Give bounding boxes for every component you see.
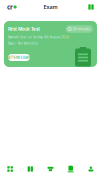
staticText: 20 minutes: [73, 27, 91, 31]
staticText: ATTEND EXAM: [8, 55, 30, 59]
staticText: First Mock Test: [8, 26, 40, 32]
button[interactable]: My notes: [88, 4, 94, 10]
button[interactable]: Courses: [20, 158, 40, 180]
staticText: Status : Not Attended: [8, 41, 38, 45]
button[interactable]: Dashboard: [0, 158, 20, 180]
button[interactable]: Exam: [61, 158, 81, 180]
button[interactable]: Home: [7, 2, 17, 12]
button[interactable]: ATTEND EXAM: [8, 54, 30, 61]
staticText: cr: [7, 2, 13, 12]
button[interactable]: Profile: [81, 158, 101, 180]
staticText: Exam will close on Sunday, 4th August 20…: [8, 35, 69, 39]
staticText: Exam: [43, 3, 57, 11]
button[interactable]: Classes: [40, 158, 61, 180]
